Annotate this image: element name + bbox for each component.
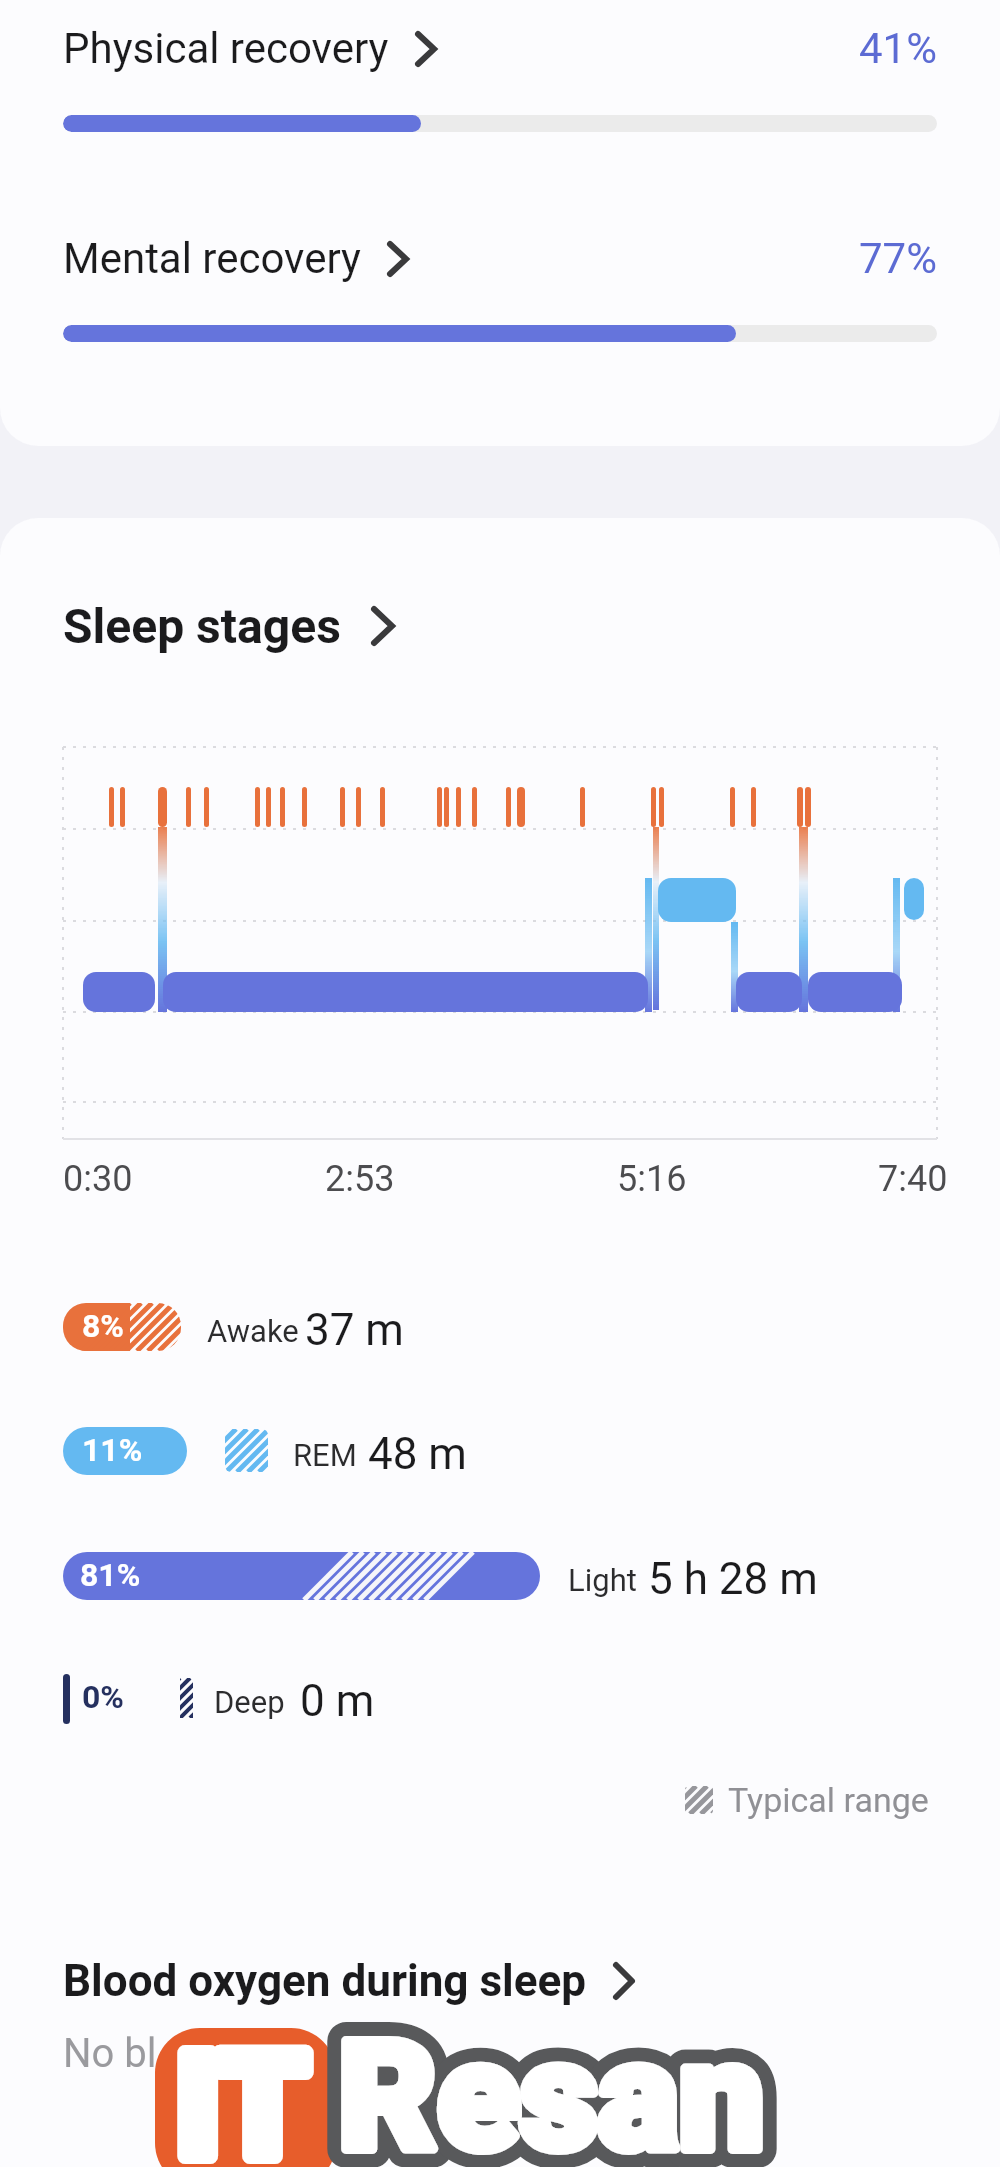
staticText: 0% [82, 1678, 124, 1716]
staticText: Sleep stages [63, 598, 341, 654]
staticText: 5 h 28 m [648, 1553, 818, 1605]
staticText: Awake [207, 1313, 299, 1349]
staticText: Resan [338, 2008, 765, 2167]
staticText: Blood oxygen during sleep [63, 1955, 587, 2007]
staticText: Deep [214, 1684, 285, 1720]
staticText: IT [176, 2022, 309, 2167]
staticText: Typical range [728, 1780, 929, 1820]
staticText: Mental recovery [63, 234, 361, 283]
staticText: Physical recovery [63, 24, 389, 73]
staticText: 41% [859, 24, 937, 73]
button[interactable]: Mental recovery [63, 234, 409, 283]
staticText: 48 m [368, 1428, 467, 1480]
button[interactable]: Physical recovery [63, 24, 437, 73]
staticText: 7:40 [878, 1158, 948, 1200]
staticText: Light [568, 1562, 637, 1598]
button[interactable]: Sleep stages [63, 598, 395, 654]
button[interactable]: Blood oxygen during sleep [63, 1955, 635, 2007]
staticText: 77% [859, 234, 937, 283]
staticText: Resan [338, 2008, 765, 2167]
staticText: 2:53 [325, 1158, 395, 1200]
staticText: 0 m [300, 1675, 375, 1727]
staticText: 0:30 [63, 1158, 133, 1200]
staticText: 11% [82, 1431, 143, 1469]
staticText: 8% [82, 1307, 124, 1345]
staticText: 37 m [305, 1304, 404, 1356]
staticText: No bl [63, 2030, 157, 2077]
staticText: 5:16 [617, 1158, 687, 1200]
staticText: Resan [338, 2008, 765, 2167]
staticText: REM [293, 1437, 357, 1473]
staticText: 81% [80, 1556, 141, 1594]
staticText: IT [176, 2022, 309, 2167]
